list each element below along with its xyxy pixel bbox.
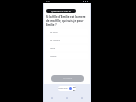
button[interactable]: QUESTION 3 SUR 10 <box>46 9 76 13</box>
staticText: QUESTION 3 SUR 10 <box>51 10 71 13</box>
button[interactable]: Profile <box>76 93 88 102</box>
staticText: Tante <box>50 47 56 50</box>
staticText: Mamie <box>50 55 57 58</box>
staticText: Sa mere <box>50 31 58 34</box>
button[interactable]: Tante <box>46 45 88 51</box>
button[interactable]: Mamie <box>46 53 88 59</box>
staticText: Glide <box>73 86 76 91</box>
button[interactable]: Sa mere <box>46 29 88 35</box>
button[interactable]: Search <box>61 93 73 102</box>
button[interactable]: Home <box>46 93 58 102</box>
staticText: 9:41 <box>46 0 51 3</box>
staticText: Sa cousine <box>50 39 60 42</box>
button[interactable]: Made with <box>58 86 76 91</box>
staticText: Made with <box>58 87 68 90</box>
button[interactable]: Sa cousine <box>46 37 88 43</box>
staticText: VALIDER <box>63 77 73 80</box>
button[interactable]: VALIDER <box>51 75 84 82</box>
staticText: Si la fille d'Emilie est la mere de ma f… <box>46 15 86 27</box>
